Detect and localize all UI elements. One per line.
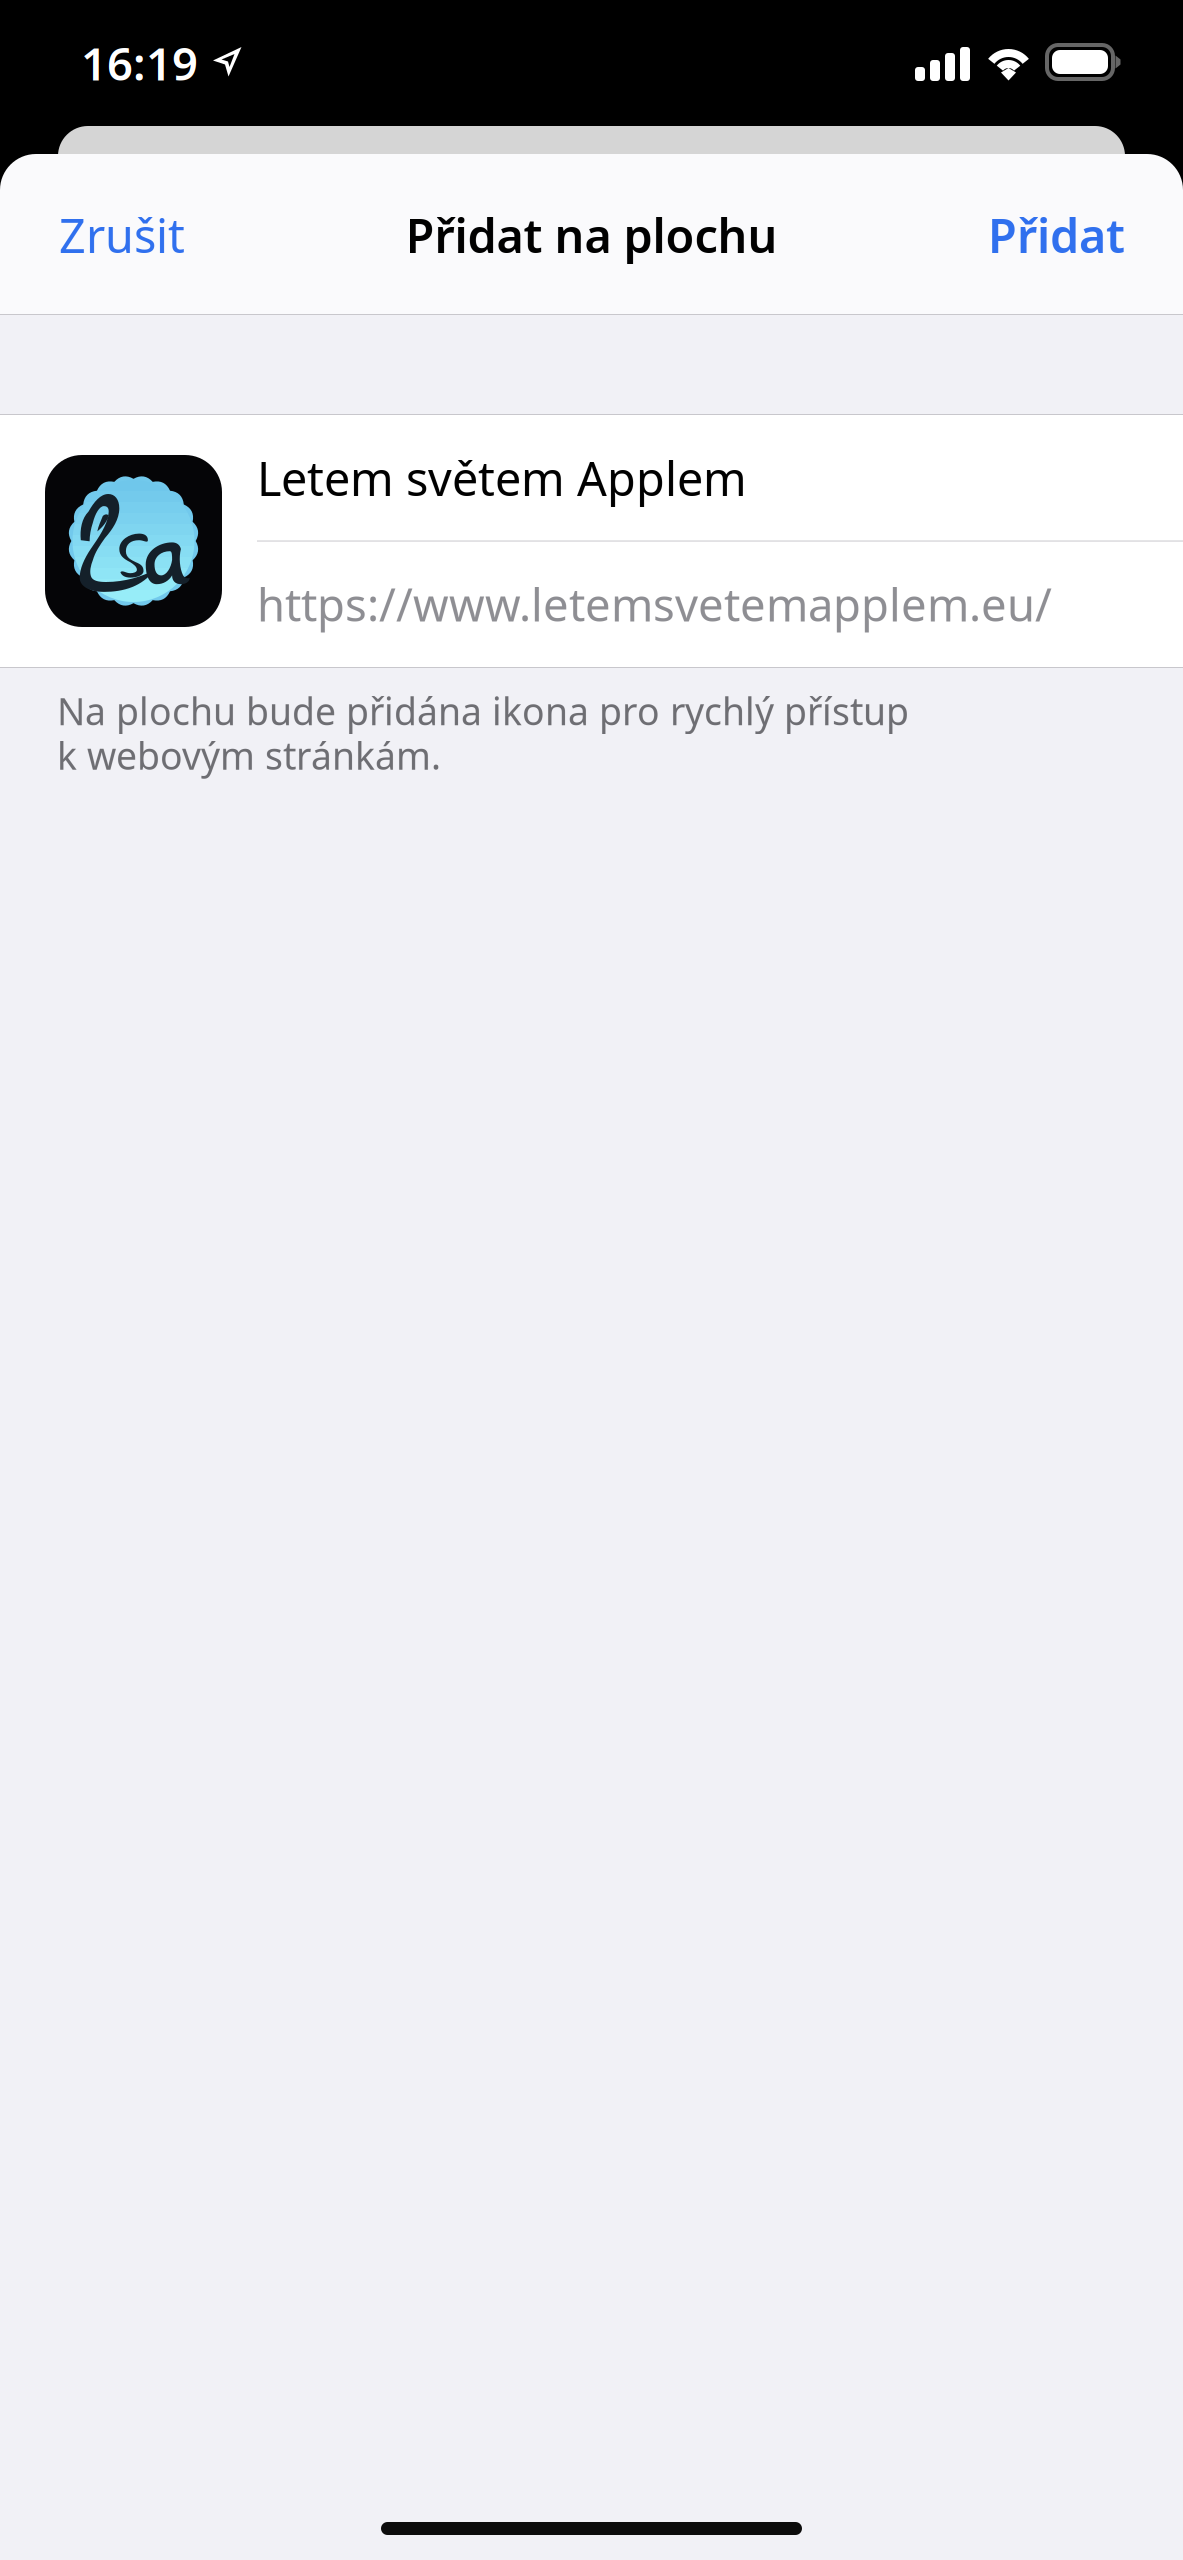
- staticText: https://www.letemsvetemapplem.eu/: [257, 574, 1052, 634]
- button[interactable]: Přidat: [964, 154, 1183, 314]
- staticText: Přidat: [988, 204, 1125, 266]
- button[interactable]: Letem světem Applem: [0, 415, 1183, 667]
- staticText: Na plochu bude přidána ikona pro rychlý …: [57, 686, 909, 780]
- staticText: Letem světem Applem: [257, 447, 747, 509]
- staticText: 16:19: [81, 33, 198, 93]
- staticText: Přidat na plochu: [405, 204, 777, 266]
- button[interactable]: Zrušit: [0, 154, 209, 314]
- staticText: Zrušit: [59, 204, 185, 266]
